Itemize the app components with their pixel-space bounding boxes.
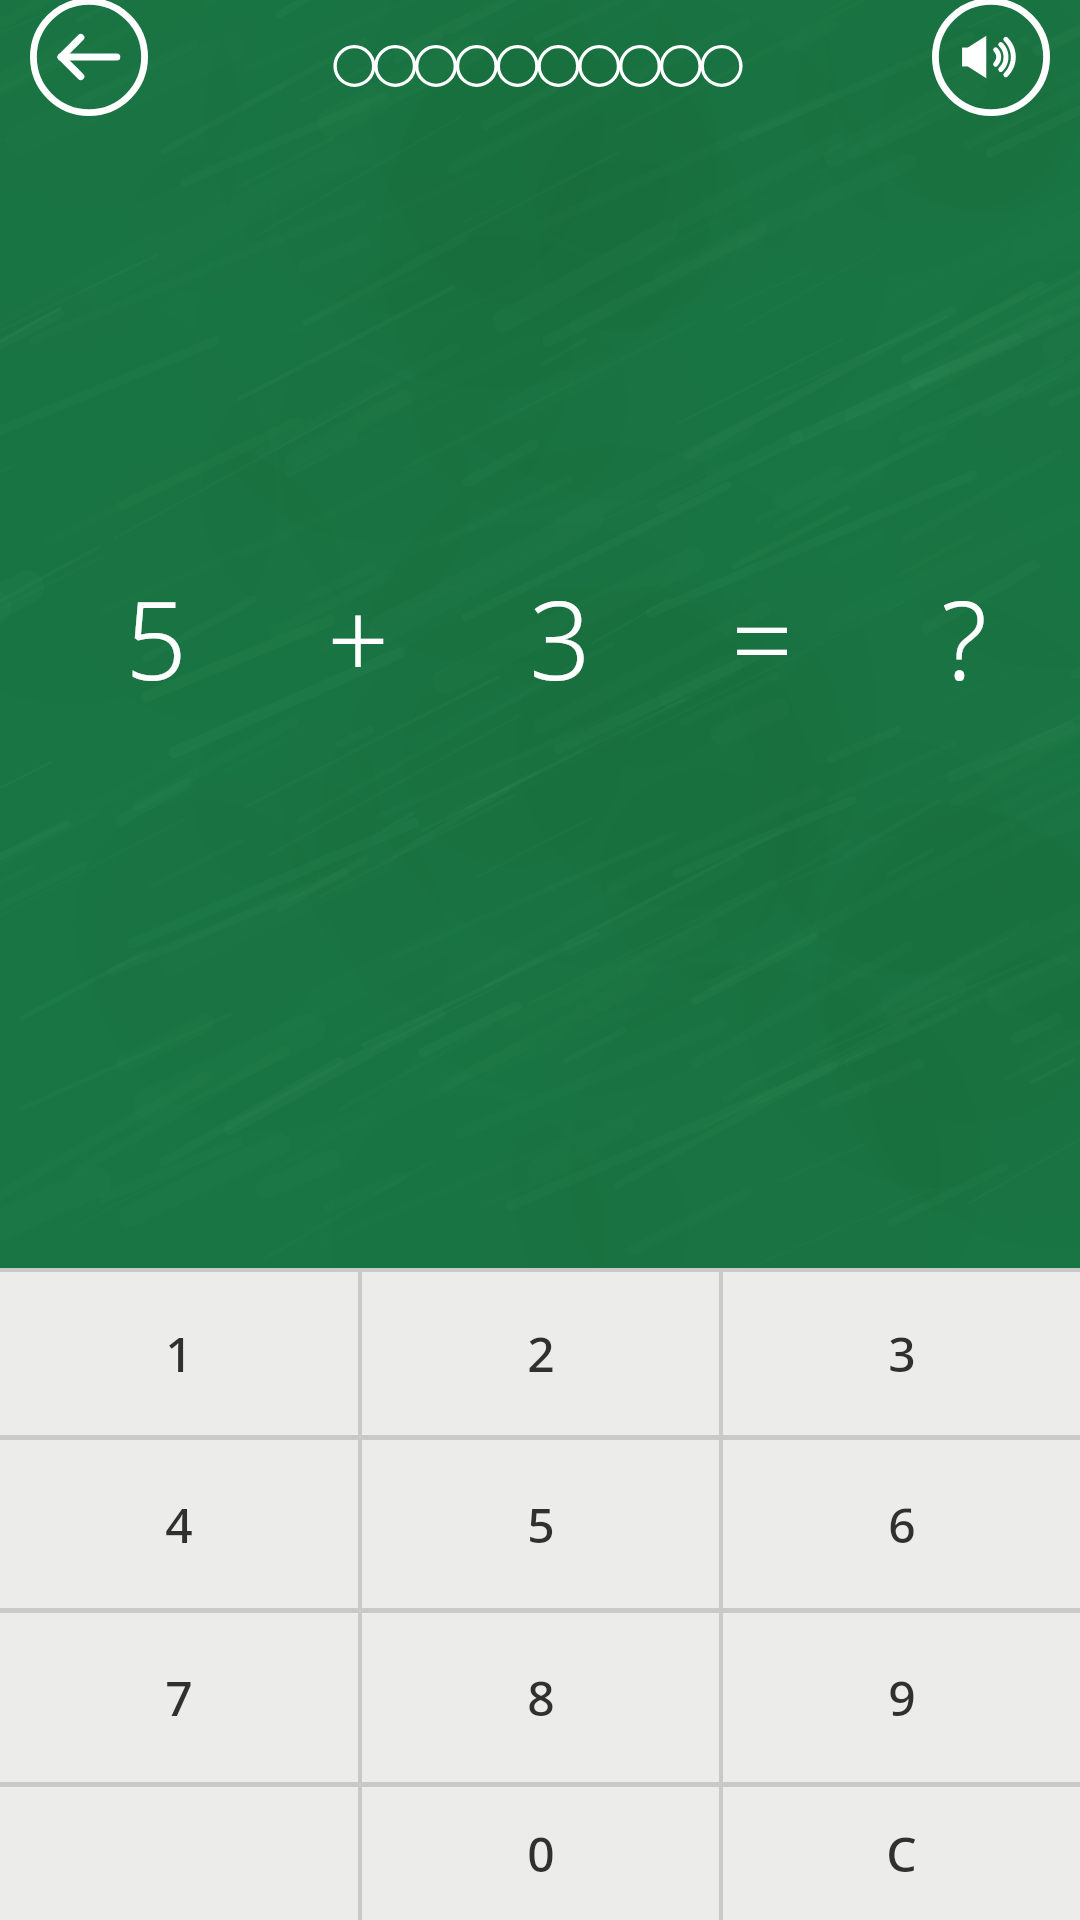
staticText: ? [941, 565, 987, 705]
staticText: 5 [527, 1492, 555, 1557]
button[interactable]: C [723, 1787, 1080, 1920]
button[interactable]: 3 [723, 1272, 1080, 1435]
staticText: 3 [529, 565, 591, 705]
staticText: 9 [888, 1665, 916, 1730]
button[interactable]: 0 [362, 1787, 719, 1920]
button[interactable]: 1 [0, 1272, 358, 1435]
button[interactable]: 9 [723, 1613, 1080, 1782]
staticText: 4 [165, 1492, 193, 1557]
staticText: + [327, 565, 389, 705]
staticText: 5 [125, 565, 187, 705]
button[interactable]: Back [30, 0, 148, 116]
staticText: 7 [165, 1665, 193, 1730]
button[interactable]: 8 [362, 1613, 719, 1782]
button[interactable]: 2 [362, 1272, 719, 1435]
button[interactable]: 7 [0, 1613, 358, 1782]
button[interactable]: Sound [932, 0, 1050, 116]
button[interactable]: 4 [0, 1440, 358, 1608]
staticText: 1 [165, 1321, 193, 1386]
staticText: = [731, 565, 793, 705]
button[interactable]: 6 [723, 1440, 1080, 1608]
staticText: 6 [888, 1492, 916, 1557]
button[interactable]: 5 [362, 1440, 719, 1608]
staticText: C [886, 1821, 917, 1886]
staticText: 0 [527, 1821, 555, 1886]
staticText: 8 [527, 1665, 555, 1730]
staticText: 3 [888, 1321, 916, 1386]
staticText: 2 [527, 1321, 555, 1386]
